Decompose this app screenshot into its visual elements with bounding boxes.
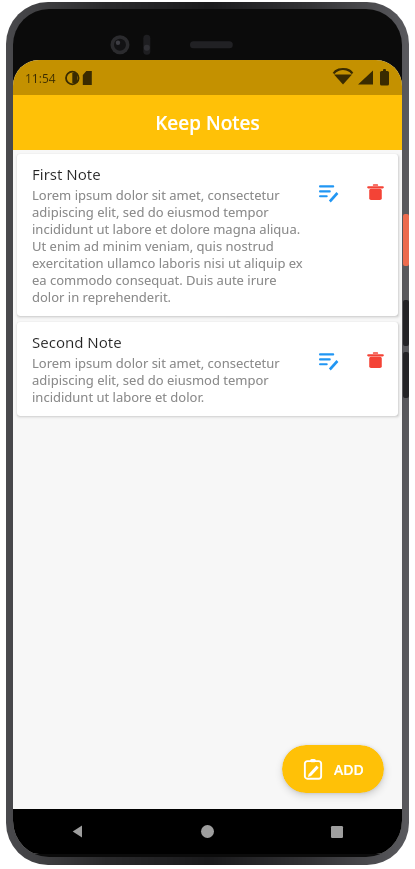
- button[interactable]: Delete note: [361, 346, 390, 375]
- staticText: Lorem ipsum dolor sit amet, consectetur …: [32, 354, 304, 406]
- button[interactable]: Recent apps: [272, 809, 402, 854]
- staticText: 11:54: [25, 70, 56, 86]
- button[interactable]: Back: [13, 809, 142, 854]
- staticText: ADD: [334, 760, 364, 779]
- button[interactable]: ADD: [282, 745, 384, 793]
- button[interactable]: Delete note: [361, 178, 390, 207]
- button[interactable]: Home: [142, 809, 272, 854]
- staticText: First Note: [32, 164, 101, 184]
- staticText: Keep Notes: [155, 110, 260, 136]
- button[interactable]: Second Note: [17, 322, 398, 416]
- button[interactable]: First Note: [17, 154, 398, 316]
- button[interactable]: Edit note: [314, 346, 343, 375]
- staticText: Lorem ipsum dolor sit amet, consectetur …: [32, 186, 304, 306]
- staticText: Second Note: [32, 332, 122, 352]
- button[interactable]: Edit note: [314, 178, 343, 207]
